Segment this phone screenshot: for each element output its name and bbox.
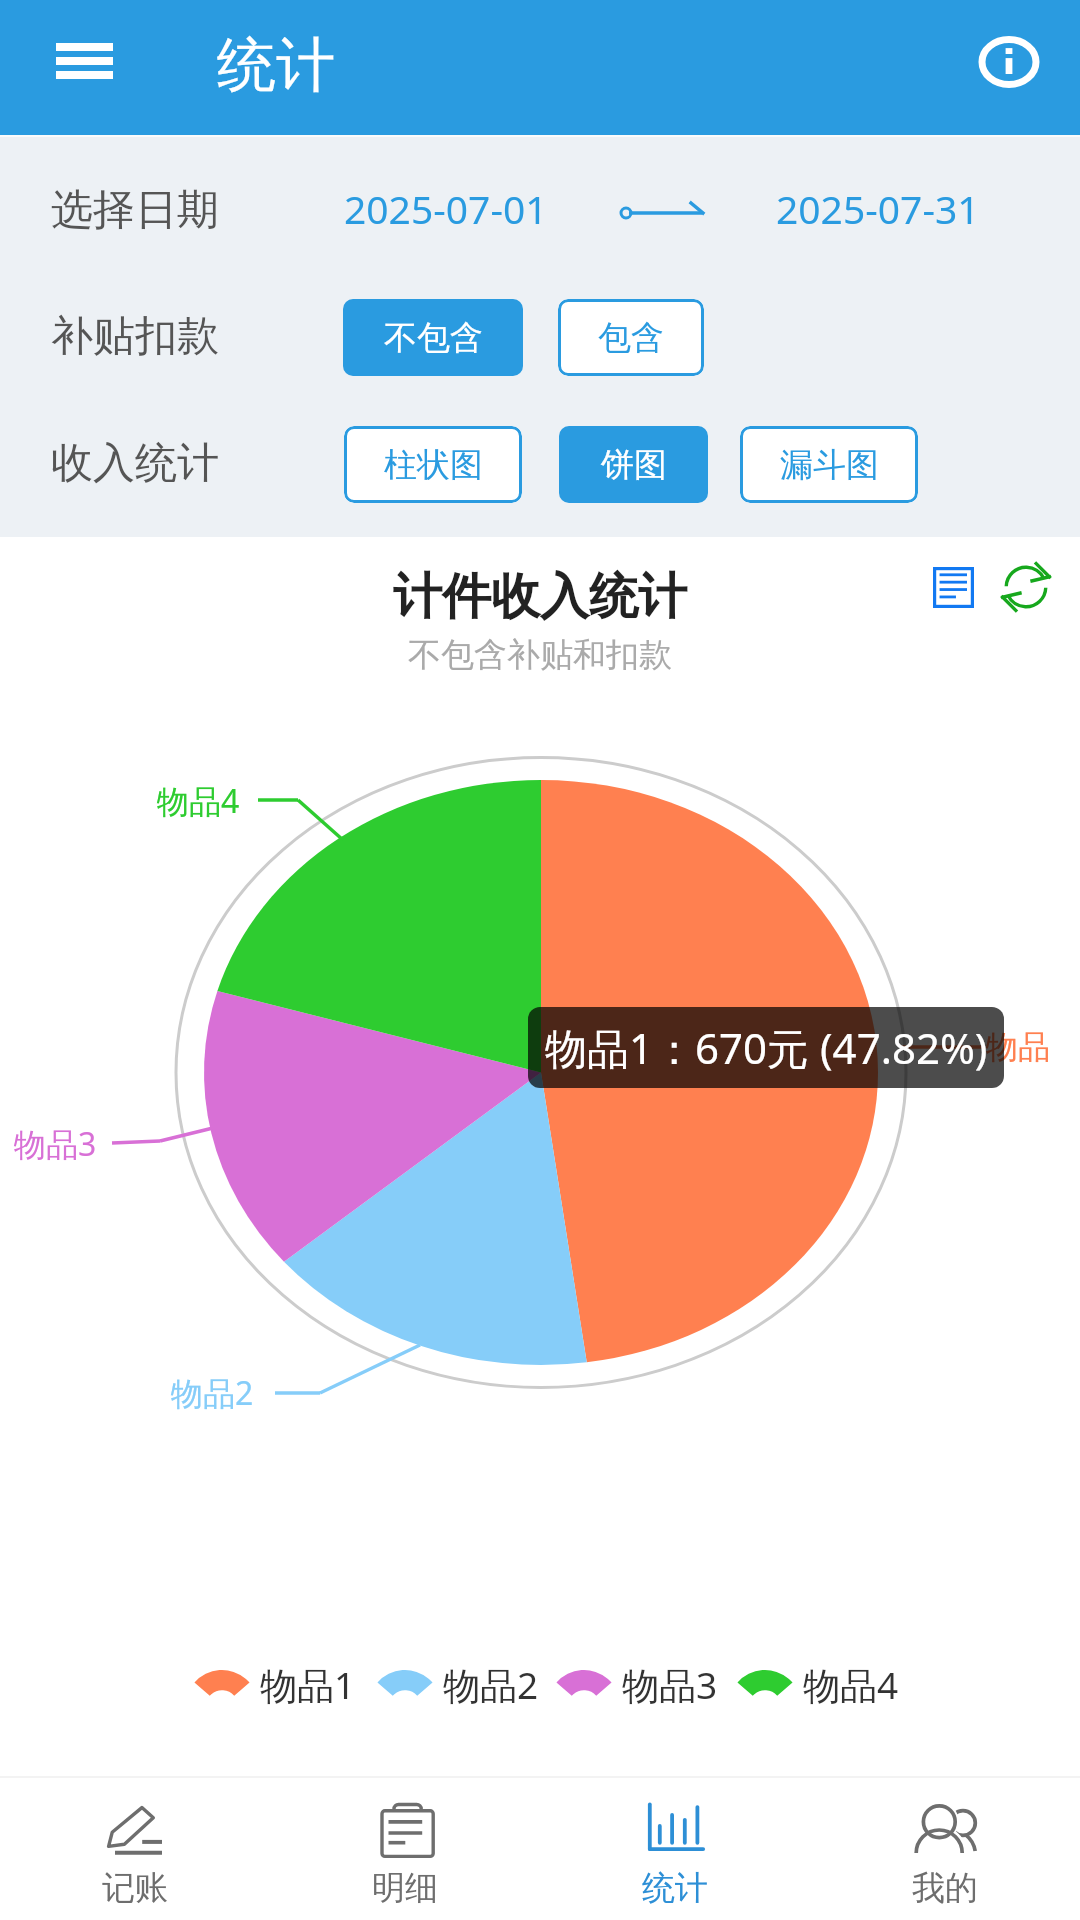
button[interactable]: 漏斗图 bbox=[740, 426, 918, 503]
staticText: 选择日期 bbox=[51, 184, 219, 237]
staticText: 补贴扣款 bbox=[51, 310, 219, 363]
staticText: 柱状图 bbox=[384, 444, 483, 486]
button[interactable]: Refresh bbox=[990, 551, 1062, 623]
staticText: 物品4 bbox=[157, 779, 240, 823]
staticText: 记账 bbox=[102, 1867, 168, 1909]
button[interactable]: 统计 bbox=[540, 1778, 810, 1920]
staticText: 物品1：670元 (47.82%) bbox=[545, 1019, 988, 1076]
staticText: 物品3 bbox=[622, 1659, 718, 1710]
staticText: 统计 bbox=[642, 1867, 708, 1909]
staticText: 包含 bbox=[598, 317, 664, 359]
button[interactable]: 记账 bbox=[0, 1778, 270, 1920]
staticText: 物品3 bbox=[14, 1122, 97, 1166]
staticText: 饼图 bbox=[601, 444, 667, 486]
staticText: 计件收入统计 bbox=[393, 566, 687, 628]
staticText: 我的 bbox=[912, 1867, 978, 1909]
staticText: 漏斗图 bbox=[780, 444, 879, 486]
staticText: 收入统计 bbox=[51, 437, 219, 490]
button[interactable]: 2025-07-31 bbox=[776, 182, 980, 235]
button[interactable]: Info bbox=[957, 10, 1061, 114]
staticText: 明细 bbox=[372, 1867, 438, 1909]
staticText: 物品1 bbox=[986, 1027, 1066, 1067]
button[interactable]: 包含 bbox=[558, 299, 704, 376]
button[interactable]: 我的 bbox=[810, 1778, 1080, 1920]
button[interactable]: 不包含 bbox=[343, 299, 523, 376]
staticText: 统计 bbox=[217, 28, 335, 102]
button[interactable]: 明细 bbox=[270, 1778, 540, 1920]
staticText: 2025-07-01 bbox=[344, 182, 548, 235]
staticText: 不包含补贴和扣款 bbox=[408, 634, 672, 676]
button[interactable]: 饼图 bbox=[559, 426, 708, 503]
staticText: 物品2 bbox=[171, 1371, 254, 1415]
staticText: 物品1 bbox=[260, 1659, 356, 1710]
staticText: 物品2 bbox=[443, 1659, 539, 1710]
staticText: 物品4 bbox=[803, 1659, 899, 1710]
button[interactable]: 2025-07-01 bbox=[344, 182, 548, 235]
button[interactable]: Detail list bbox=[917, 551, 989, 623]
staticText: 2025-07-31 bbox=[776, 182, 980, 235]
button[interactable]: 柱状图 bbox=[344, 426, 522, 503]
staticText: 不包含 bbox=[384, 317, 483, 359]
button[interactable]: Menu bbox=[14, 13, 154, 109]
